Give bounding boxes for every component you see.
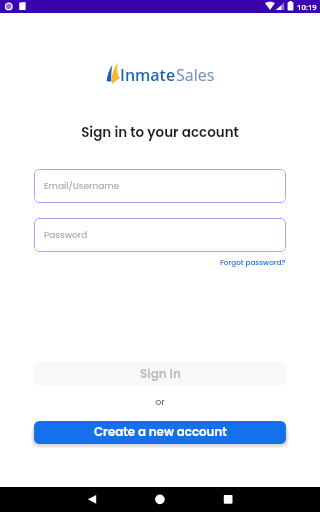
button[interactable]: Create a new account [34,421,286,444]
staticText: Sales [176,64,215,86]
button[interactable]: Email/Username [34,169,286,203]
button[interactable]: Sign In [34,361,286,386]
staticText: Sign In [140,365,181,382]
staticText: Inmate [120,64,176,86]
staticText: 10:19 [297,2,317,12]
staticText: Password [44,229,88,242]
button[interactable]: Recent apps [218,487,238,512]
button[interactable]: Back [82,487,102,512]
staticText: Sign in to your account [0,123,320,142]
staticText: Create a new account [94,424,227,441]
staticText: Forgot password? [220,257,286,267]
button[interactable]: Password [34,218,286,252]
staticText: Email/Username [44,180,120,193]
button[interactable]: Forgot password? [220,257,286,267]
staticText: or [0,395,320,408]
button[interactable]: Home [150,487,170,512]
